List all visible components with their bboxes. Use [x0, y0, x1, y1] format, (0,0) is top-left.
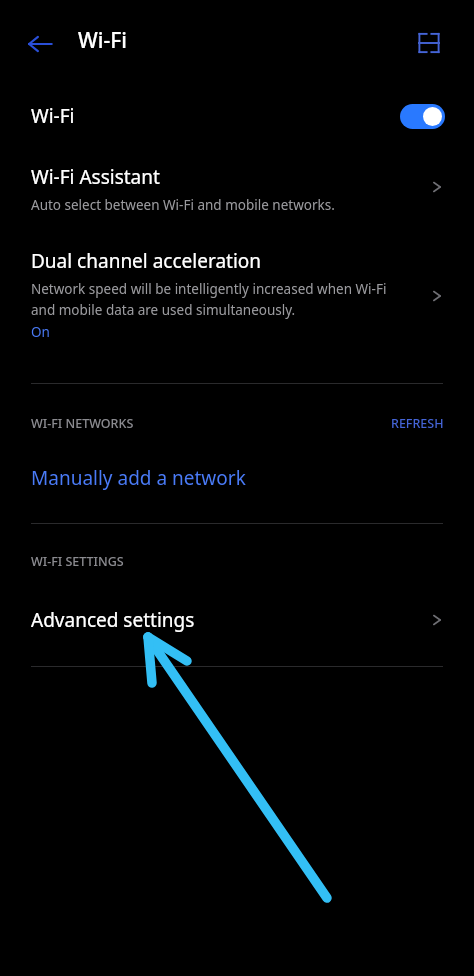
staticText: Network speed will be intelligently incr… — [31, 280, 393, 319]
button[interactable]: REFRESH — [381, 409, 454, 438]
button[interactable]: Advanced settings — [0, 590, 474, 650]
staticText: Auto select between Wi-Fi and mobile net… — [31, 196, 335, 214]
button[interactable]: Back — [16, 20, 64, 68]
staticText: Wi-Fi — [78, 26, 127, 55]
button[interactable]: Scan QR code — [404, 18, 454, 68]
staticText: On — [31, 323, 50, 341]
staticText: Wi-Fi — [31, 103, 75, 129]
staticText: REFRESH — [391, 415, 444, 432]
staticText: Advanced settings — [31, 607, 195, 633]
staticText: WI-FI SETTINGS — [31, 553, 124, 570]
button[interactable]: Wi-Fi — [0, 86, 474, 146]
staticText: Manually add a network — [31, 465, 246, 491]
button[interactable]: Dual channel acceleration — [0, 238, 474, 364]
staticText: WI-FI NETWORKS — [31, 415, 134, 432]
button[interactable]: Manually add a network — [0, 448, 474, 508]
button[interactable]: Wi-Fi Assistant — [0, 152, 474, 230]
staticText: Dual channel acceleration — [31, 248, 262, 274]
staticText: Wi-Fi Assistant — [31, 164, 160, 190]
